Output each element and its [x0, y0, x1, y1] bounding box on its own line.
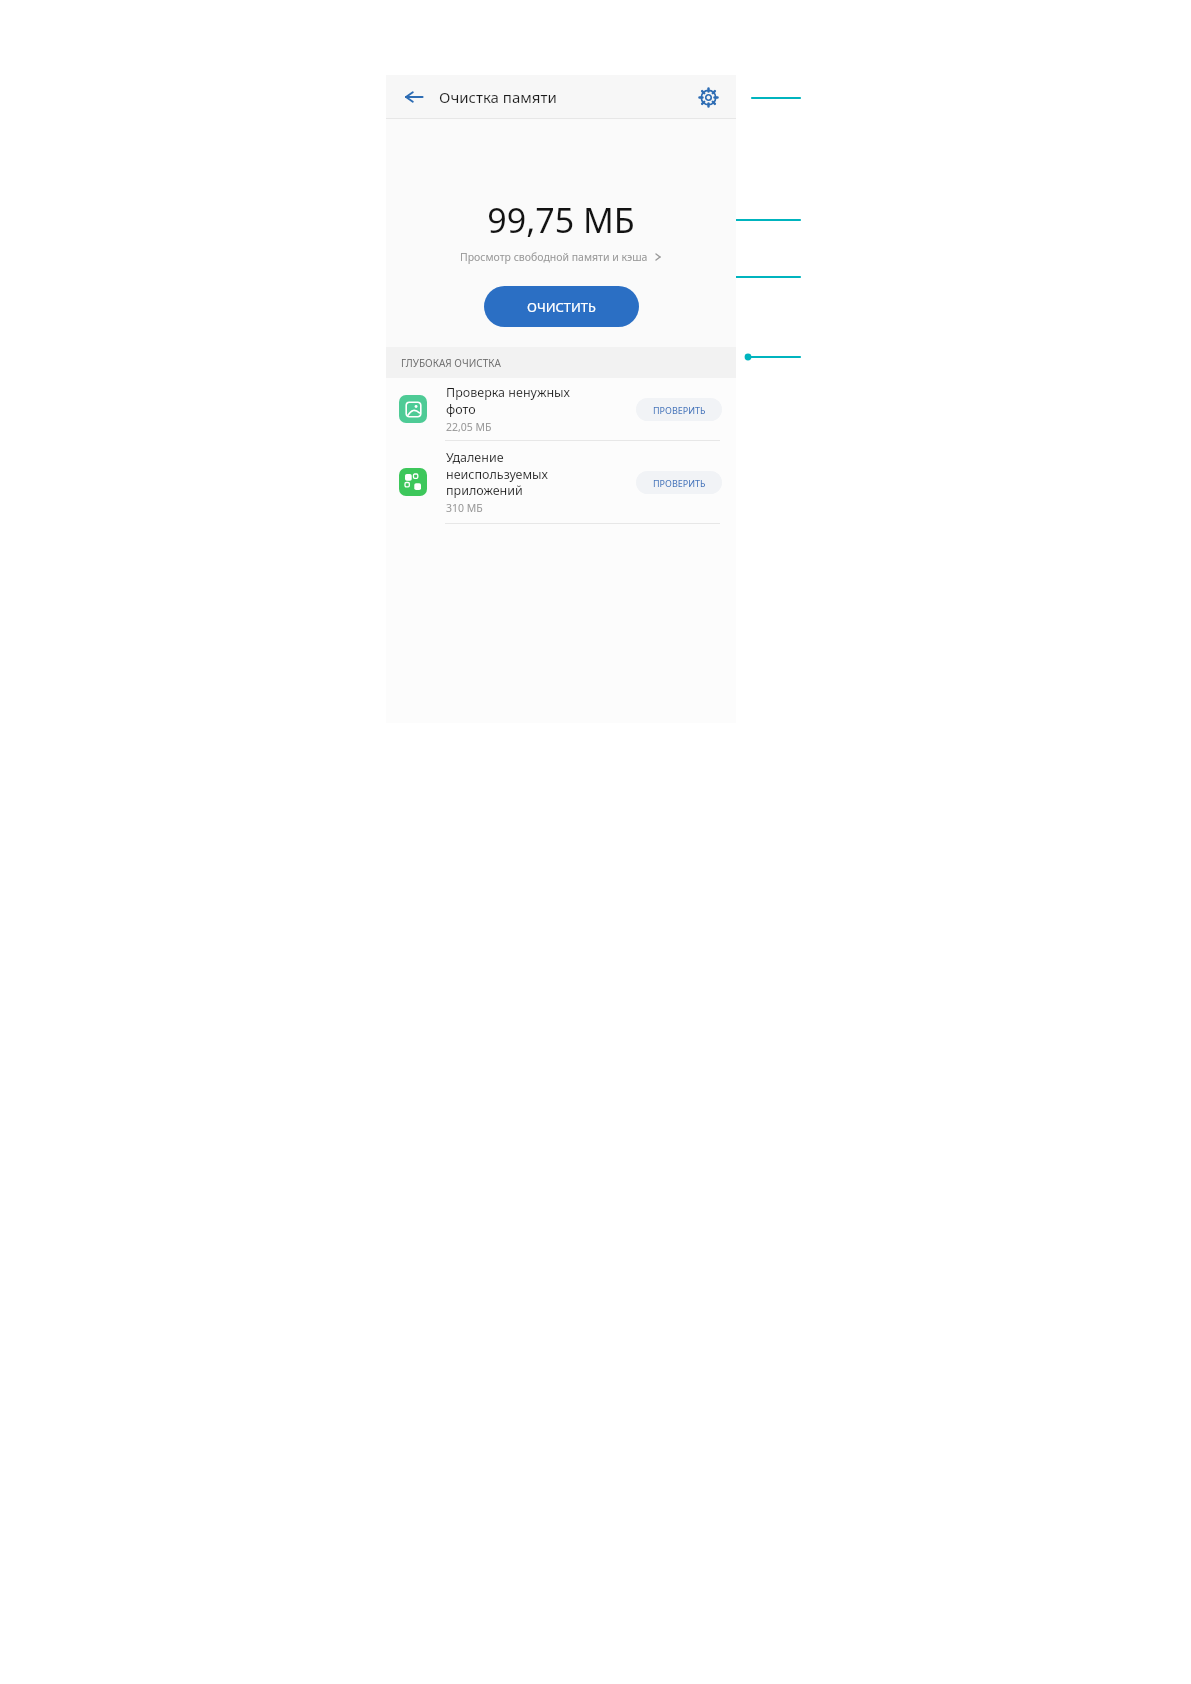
- button[interactable]: Проверка ненужных фото: [386, 378, 736, 440]
- button[interactable]: Настройки: [691, 80, 725, 114]
- button[interactable]: ПРОВЕРИТЬ: [636, 398, 722, 421]
- staticText: Удаление неиспользуемых приложений: [446, 449, 548, 498]
- staticText: Проверка ненужных фото: [446, 384, 570, 417]
- button[interactable]: ОЧИСТИТЬ: [484, 286, 639, 327]
- staticText: 22,05 МБ: [446, 420, 492, 434]
- staticText: ОЧИСТИТЬ: [527, 298, 596, 316]
- button[interactable]: Просмотр свободной памяти и кэша: [460, 250, 663, 264]
- staticText: ПРОВЕРИТЬ: [653, 477, 706, 489]
- staticText: 99,75 МБ: [487, 197, 635, 243]
- staticText: 310 МБ: [446, 501, 483, 515]
- staticText: ГЛУБОКАЯ ОЧИСТКА: [401, 356, 501, 370]
- staticText: ПРОВЕРИТЬ: [653, 404, 706, 416]
- staticText: Просмотр свободной памяти и кэша: [460, 250, 648, 264]
- button[interactable]: Назад: [397, 80, 431, 114]
- staticText: Очистка памяти: [439, 87, 557, 107]
- button[interactable]: Удаление неиспользуемых приложений: [386, 441, 736, 523]
- button[interactable]: ПРОВЕРИТЬ: [636, 471, 722, 494]
